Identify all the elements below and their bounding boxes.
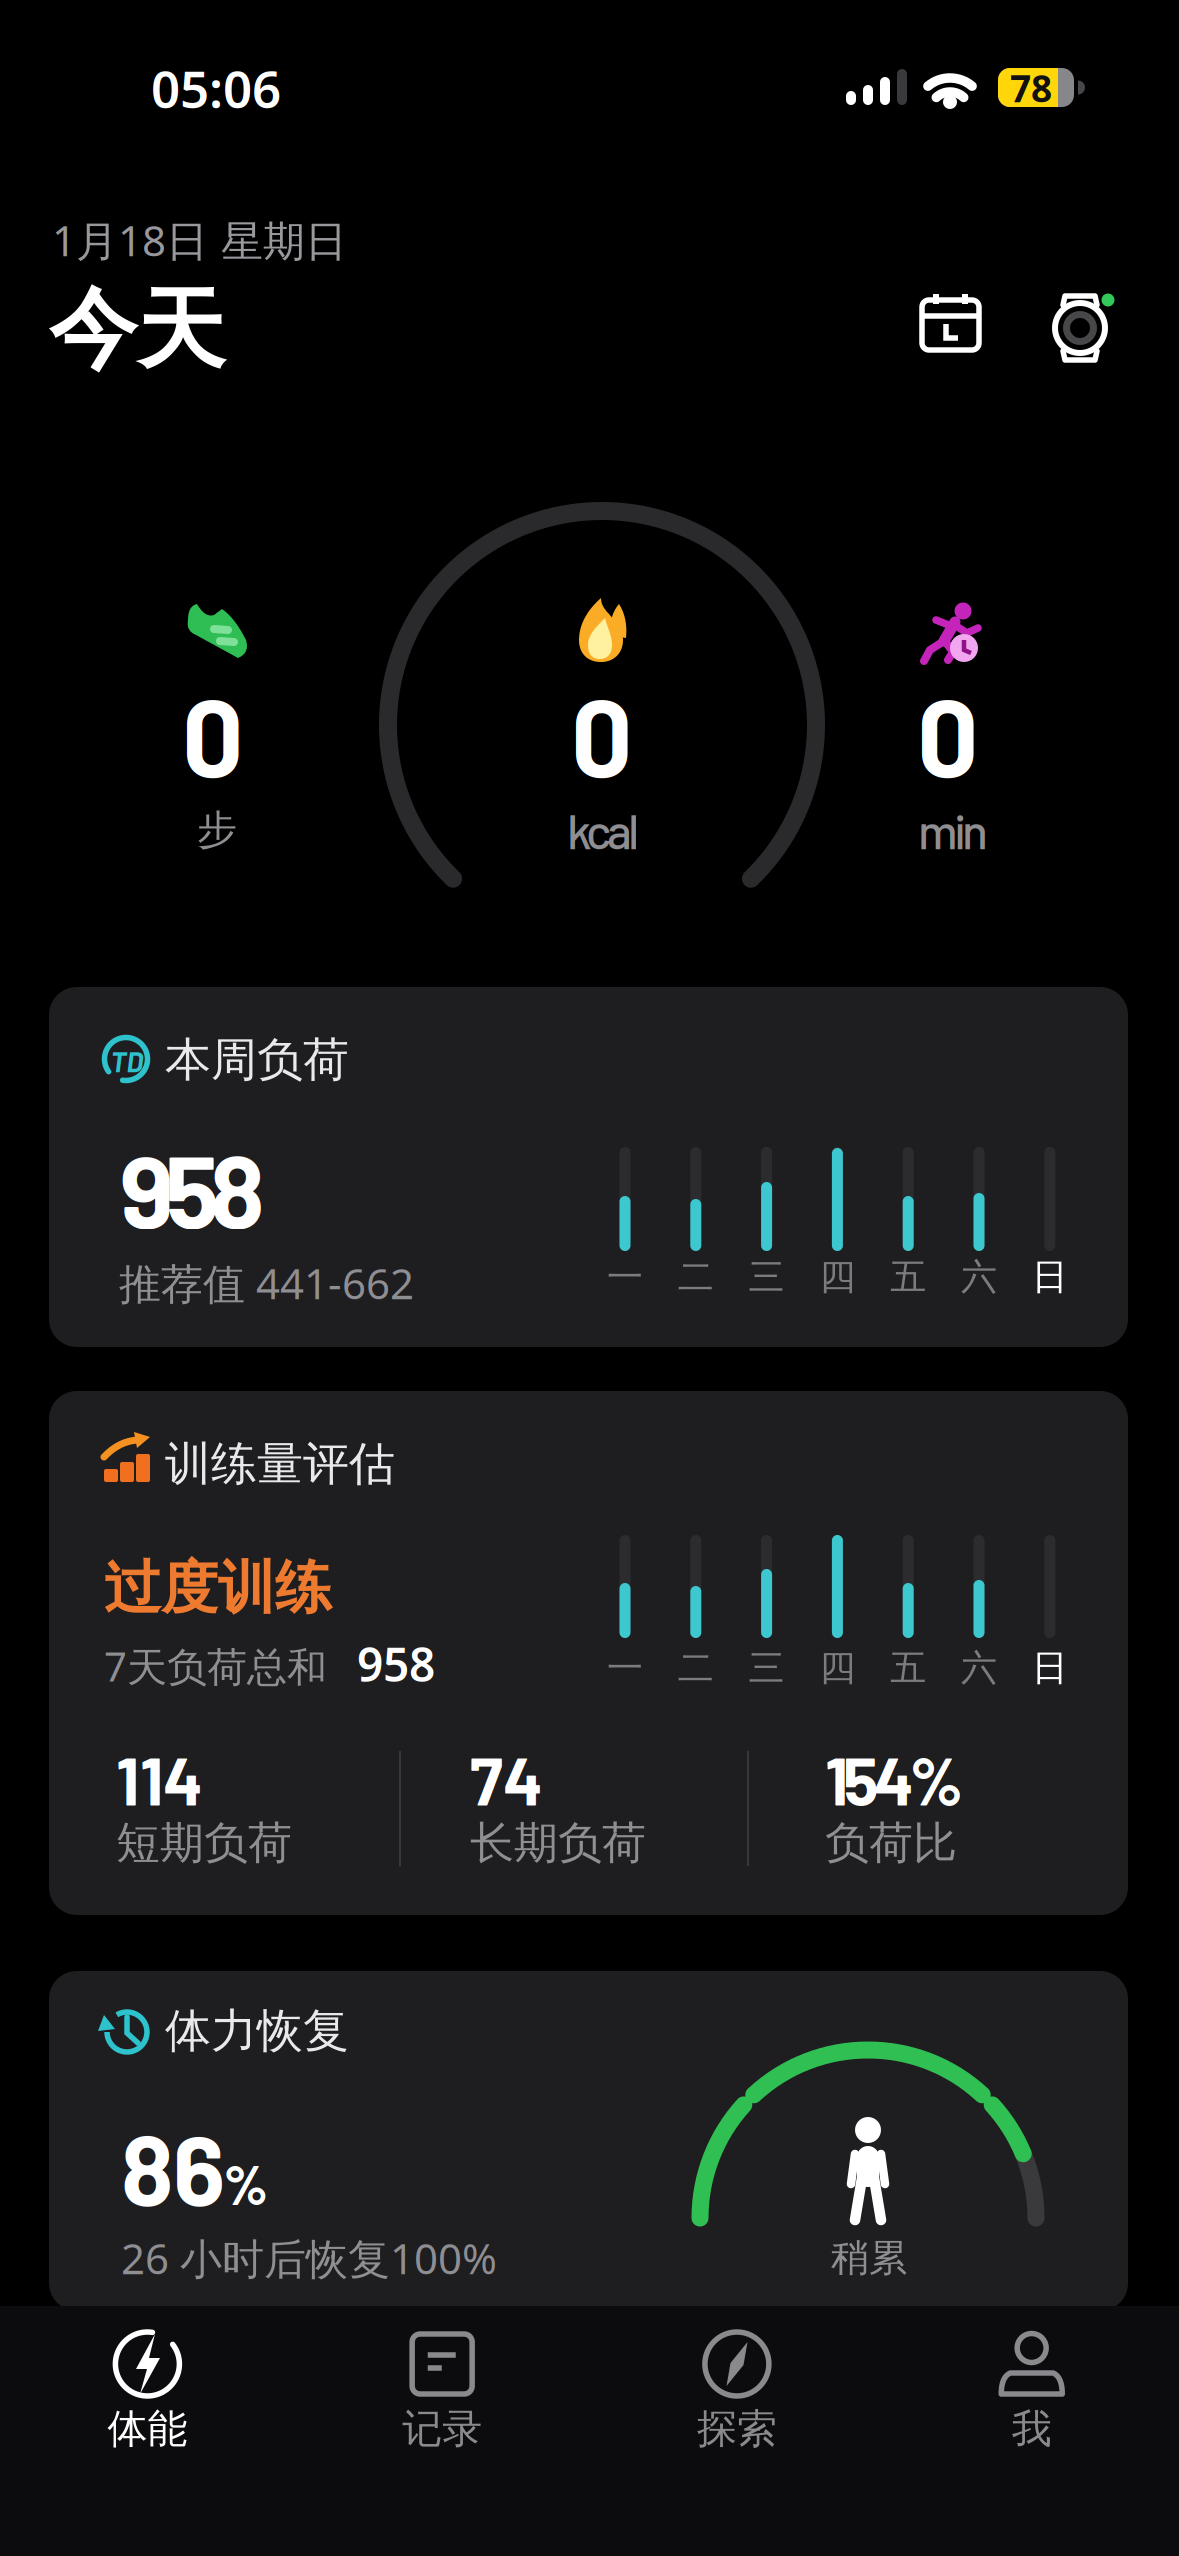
button[interactable]: 探索 (589, 2306, 884, 2556)
staticText: 过度训练 (104, 1552, 332, 1624)
staticText: 五 (890, 1645, 926, 1691)
staticText: 四 (819, 1254, 855, 1300)
staticText: 长期负荷 (470, 1815, 646, 1871)
staticText: 短期负荷 (116, 1815, 292, 1871)
staticText: 一 (607, 1645, 643, 1691)
staticText: 114 (116, 1739, 203, 1819)
staticText: 0 (182, 669, 244, 799)
staticText: 958 (120, 1127, 265, 1249)
staticText: 稍累 (831, 2234, 907, 2282)
staticText: 一 (607, 1254, 643, 1300)
staticText: 体能 (107, 2404, 187, 2454)
button[interactable]: 记录 (295, 2306, 590, 2556)
staticText: 154% (825, 1739, 963, 1819)
staticText: 记录 (402, 2404, 482, 2454)
staticText: 二 (678, 1254, 714, 1300)
staticText: 86 (121, 2109, 225, 2225)
staticText: 体力恢复 (165, 2002, 349, 2060)
staticText: 74 (470, 1739, 543, 1819)
staticText: min (918, 801, 988, 859)
staticText: 三 (749, 1254, 785, 1300)
staticText: 0 (571, 669, 633, 799)
staticText: 步 (197, 805, 237, 855)
staticText: 四 (819, 1645, 855, 1691)
button[interactable]: 日历 (905, 283, 995, 373)
staticText: 负荷比 (825, 1815, 957, 1871)
staticText: 训练量评估 (165, 1435, 395, 1493)
staticText: 二 (678, 1645, 714, 1691)
staticText: TD (110, 1044, 143, 1078)
staticText: 五 (890, 1254, 926, 1300)
button[interactable]: TD (49, 987, 1128, 1347)
staticText: % (223, 2150, 268, 2216)
staticText: 我 (1012, 2404, 1052, 2454)
staticText: 日 (1032, 1254, 1068, 1300)
button[interactable]: 体力恢复 (49, 1971, 1128, 2311)
staticText: 今天 (49, 275, 225, 385)
staticText: 日 (1032, 1645, 1068, 1691)
button[interactable]: 手表设备 (1036, 280, 1132, 376)
staticText: 六 (961, 1645, 997, 1691)
staticText: 0 (917, 669, 979, 799)
staticText: 26 小时后恢复100% (121, 2229, 497, 2287)
staticText: 本周负荷 (165, 1031, 349, 1089)
staticText: 六 (961, 1254, 997, 1300)
staticText: 三 (749, 1645, 785, 1691)
staticText: 78 (1010, 63, 1052, 113)
staticText: 05:06 (151, 53, 281, 123)
staticText: 1月18日 星期日 (52, 211, 347, 269)
staticText: 推荐值 441-662 (119, 1254, 414, 1312)
staticText: 探索 (697, 2404, 777, 2454)
staticText: 7天负荷总和 (104, 1639, 327, 1693)
button[interactable]: 体能 (0, 2306, 295, 2556)
staticText: 958 (357, 1633, 435, 1695)
button[interactable]: 我 (884, 2306, 1179, 2556)
button[interactable]: 训练量评估 (49, 1391, 1128, 1915)
staticText: kcal (567, 801, 639, 859)
